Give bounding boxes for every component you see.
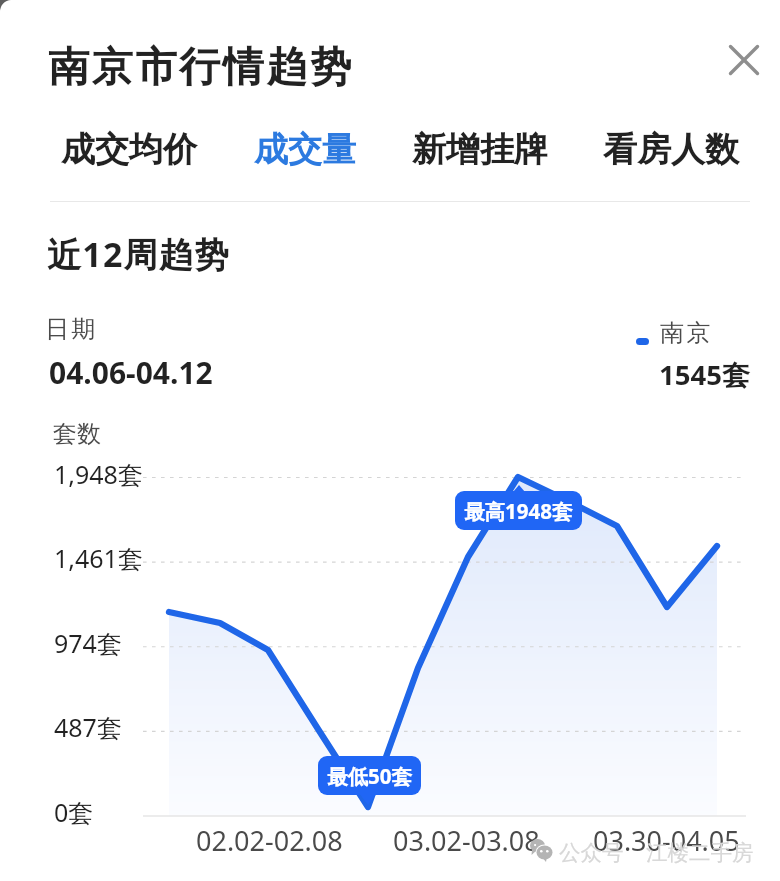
staticText: 公众号 [559, 839, 624, 866]
staticText: 南京市行情趋势 [48, 42, 354, 94]
staticText: 最低50套 [327, 762, 412, 790]
staticText: 1,461套 [54, 541, 143, 575]
staticText: 974套 [54, 626, 122, 660]
staticText: 1,948套 [54, 457, 143, 491]
staticText: 02.02-02.08 [196, 822, 343, 859]
staticText: 03.30-04.05 [593, 822, 740, 859]
button[interactable]: 成交量 [250, 120, 360, 178]
staticText: 1545套 [659, 356, 750, 394]
staticText: 487套 [54, 710, 122, 744]
staticText: 江楼二手房 [646, 839, 754, 866]
staticText: 0套 [54, 795, 94, 829]
button[interactable]: 新增挂牌 [406, 120, 554, 178]
staticText: 04.06-04.12 [49, 352, 213, 393]
staticText: 近12周趋势 [47, 231, 230, 277]
staticText: 套数 [53, 419, 101, 449]
button[interactable]: 看房人数 [597, 120, 745, 178]
staticText: 南京 [660, 318, 714, 348]
staticText: 日期 [45, 314, 99, 344]
staticText: 新增挂牌 [412, 128, 548, 171]
staticText: 成交均价 [61, 128, 197, 171]
button[interactable]: Close [716, 32, 772, 88]
staticText: 03.02-03.08 [393, 822, 540, 859]
button[interactable]: 成交均价 [55, 120, 203, 178]
staticText: 看房人数 [603, 128, 739, 171]
staticText: 成交量 [254, 128, 356, 171]
staticText: 最高1948套 [464, 497, 573, 525]
